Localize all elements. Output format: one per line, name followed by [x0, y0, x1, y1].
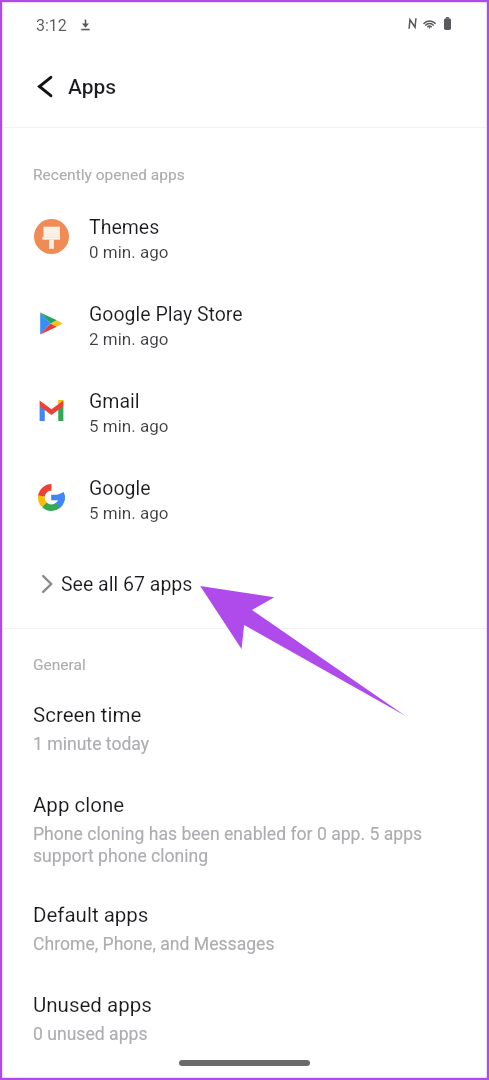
staticText: General [33, 656, 86, 674]
button[interactable]: Back [27, 68, 63, 104]
button[interactable]: Screen time [0, 692, 489, 755]
staticText: 2 min. ago [89, 329, 169, 349]
button[interactable]: Gmail [0, 369, 489, 456]
staticText: Google Play Store [89, 303, 243, 326]
button[interactable]: Default apps [0, 892, 489, 955]
staticText: Themes [89, 216, 160, 239]
button[interactable]: Themes [0, 195, 489, 282]
button[interactable]: App clone [0, 782, 489, 867]
staticText: Google [89, 477, 151, 500]
staticText: Apps [68, 75, 117, 100]
staticText: 5 min. ago [89, 416, 169, 436]
staticText: See all 67 apps [61, 573, 193, 596]
staticText: 0 unused apps [33, 1024, 433, 1045]
staticText: Chrome, Phone, and Messages [33, 934, 433, 955]
staticText: App clone [33, 793, 125, 817]
staticText: 0 min. ago [89, 242, 169, 262]
button[interactable]: Google [0, 456, 489, 543]
staticText: 3:12 [36, 16, 67, 35]
button[interactable]: See all 67 apps [0, 552, 489, 616]
staticText: Screen time [33, 703, 142, 727]
staticText: Phone cloning has been enabled for 0 app… [33, 824, 433, 867]
staticText: Gmail [89, 390, 140, 413]
staticText: Default apps [33, 903, 149, 927]
staticText: Recently opened apps [33, 166, 185, 184]
button[interactable]: Google Play Store [0, 282, 489, 369]
staticText: Unused apps [33, 993, 152, 1017]
button[interactable]: Unused apps [0, 982, 489, 1045]
staticText: 5 min. ago [89, 503, 169, 523]
staticText: 1 minute today [33, 734, 433, 755]
